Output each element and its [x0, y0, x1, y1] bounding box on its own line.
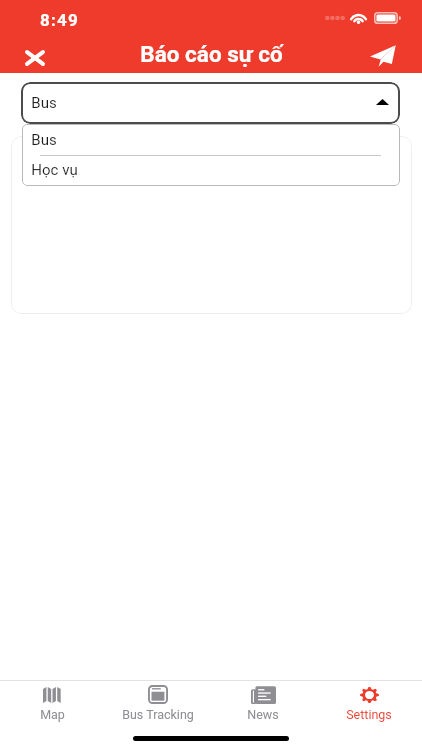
staticText: Bus: [31, 94, 57, 112]
staticText: 8:49: [40, 10, 79, 30]
button[interactable]: Close: [15, 38, 55, 78]
staticText: Map: [40, 707, 65, 722]
button[interactable]: Map: [0, 684, 105, 722]
staticText: Báo cáo sự cố: [140, 41, 283, 67]
staticText: Bus Tracking: [122, 707, 194, 722]
button[interactable]: Send: [363, 36, 403, 76]
button[interactable]: Bus Tracking: [105, 684, 210, 722]
button[interactable]: News: [210, 684, 316, 722]
staticText: Settings: [346, 707, 392, 722]
staticText: Học vụ: [31, 161, 78, 179]
button[interactable]: Bus: [21, 82, 400, 124]
button[interactable]: Học vụ: [22, 155, 400, 186]
staticText: News: [247, 707, 279, 722]
staticText: Bus: [31, 131, 57, 149]
button[interactable]: Settings: [316, 684, 422, 722]
button[interactable]: Bus: [22, 124, 400, 155]
